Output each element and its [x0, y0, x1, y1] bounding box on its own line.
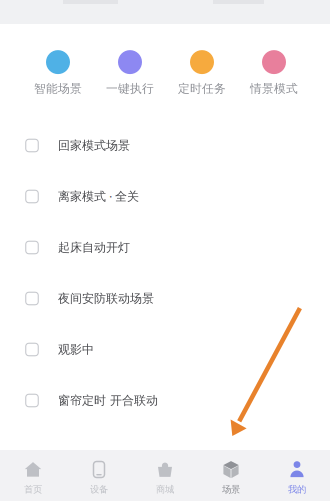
- button[interactable]: 设备: [66, 450, 132, 501]
- staticText: 离家模式 · 全关: [58, 189, 139, 204]
- staticText: 首页: [24, 483, 42, 495]
- button[interactable]: 首页: [0, 450, 66, 501]
- staticText: 商城: [156, 483, 174, 495]
- staticText: 设备: [90, 483, 108, 495]
- button[interactable]: 回家模式场景: [0, 120, 330, 171]
- staticText: 窗帘定时 开合联动: [58, 393, 158, 408]
- button[interactable]: 商城: [132, 450, 198, 501]
- staticText: 情景模式: [250, 81, 298, 96]
- staticText: 智能场景: [34, 81, 82, 96]
- staticText: 起床自动开灯: [58, 240, 130, 255]
- button[interactable]: 我的: [264, 450, 330, 501]
- button[interactable]: 场景: [198, 450, 264, 501]
- staticText: 一键执行: [106, 81, 154, 96]
- staticText: 场景: [222, 483, 240, 495]
- button[interactable]: 起床自动开灯: [0, 222, 330, 273]
- staticText: 我的: [288, 483, 306, 495]
- button[interactable]: 智能场景: [22, 51, 94, 95]
- button[interactable]: 窗帘定时 开合联动: [0, 375, 330, 426]
- staticText: 观影中: [58, 342, 94, 357]
- button[interactable]: 夜间安防联动场景: [0, 273, 330, 324]
- staticText: 夜间安防联动场景: [58, 291, 154, 306]
- button[interactable]: 一键执行: [94, 51, 166, 95]
- button[interactable]: 定时任务: [166, 51, 238, 95]
- button[interactable]: 情景模式: [238, 51, 310, 95]
- staticText: 定时任务: [178, 81, 226, 96]
- button[interactable]: 离家模式 · 全关: [0, 171, 330, 222]
- staticText: 回家模式场景: [58, 138, 130, 153]
- button[interactable]: 观影中: [0, 324, 330, 375]
